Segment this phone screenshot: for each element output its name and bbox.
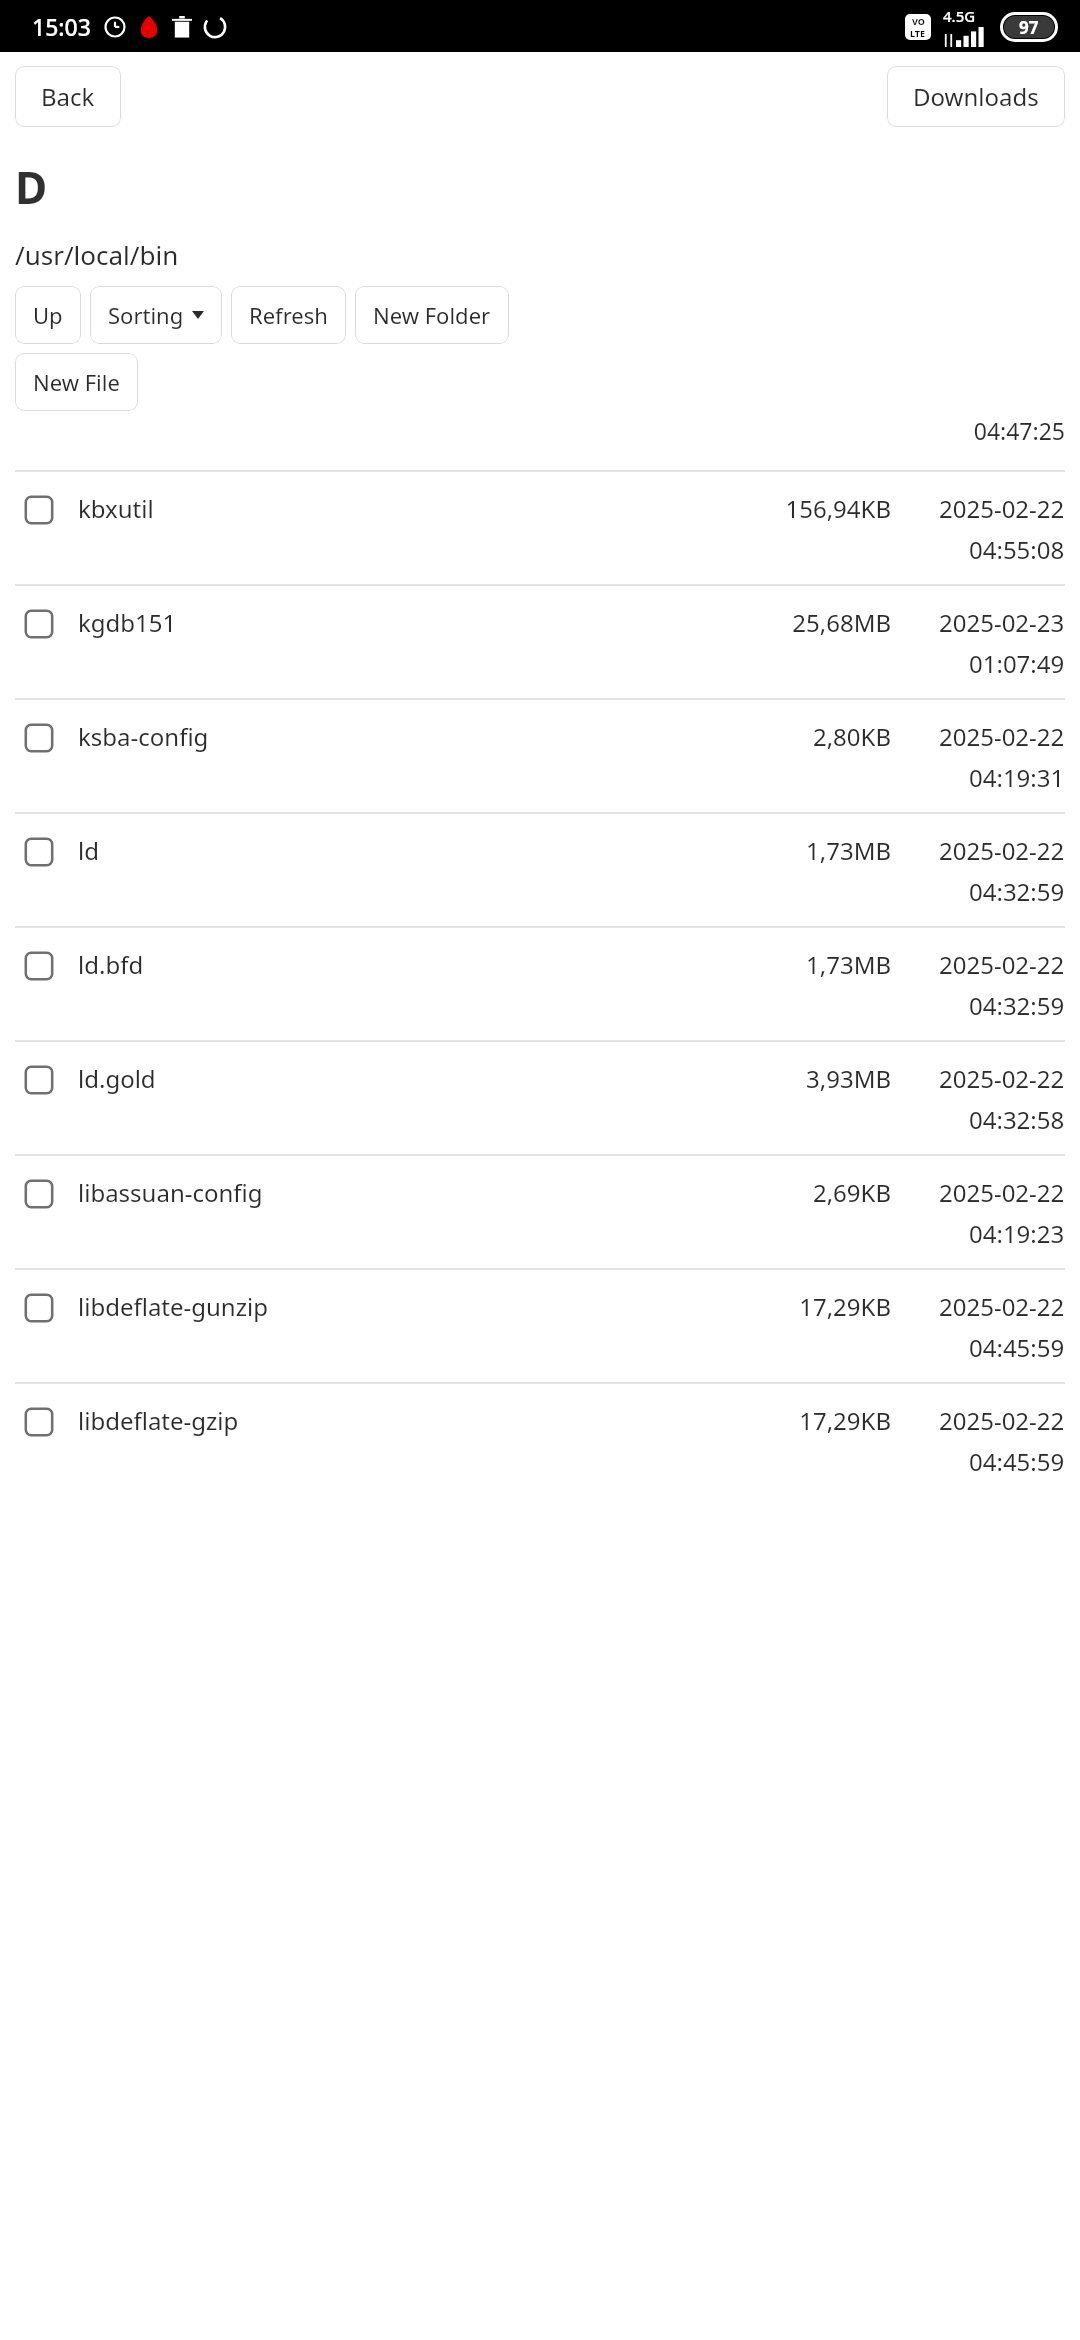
other: Select ksba-config xyxy=(24,723,54,753)
staticText: libdeflate-gzip xyxy=(78,1404,763,1437)
staticText: ld xyxy=(78,834,763,867)
staticText: 2,80KB xyxy=(763,720,891,753)
staticText: 04:55:08 xyxy=(969,533,1065,566)
staticText: 2025-02-22 xyxy=(939,492,1065,525)
staticText: 1,73MB xyxy=(763,948,891,981)
staticText: LTE xyxy=(910,27,926,39)
button[interactable]: Back xyxy=(15,66,121,127)
staticText: libdeflate-gunzip xyxy=(78,1290,763,1323)
staticText: 2025-02-22 xyxy=(939,948,1065,981)
staticText: 156,94KB xyxy=(763,492,891,525)
button[interactable]: Refresh xyxy=(231,286,346,344)
staticText: 2025-02-22 xyxy=(939,1062,1065,1095)
staticText: 2025-02-22 xyxy=(939,1176,1065,1209)
staticText: 1,73MB xyxy=(763,834,891,867)
staticText: 3,93MB xyxy=(763,1062,891,1095)
button[interactable]: Select ksba-config xyxy=(15,700,1065,812)
other: Select kbxutil xyxy=(24,495,54,525)
staticText: 25,68MB xyxy=(763,606,891,639)
staticText: Back xyxy=(41,80,95,113)
staticText: /usr/local/bin xyxy=(15,237,179,272)
other: Select kgdb151 xyxy=(24,609,54,639)
button[interactable]: Select ld.bfd xyxy=(15,928,1065,1040)
button[interactable]: Select libdeflate-gzip xyxy=(15,1384,1065,1496)
staticText: kbxutil xyxy=(78,492,763,525)
staticText: 4.5G xyxy=(943,6,976,26)
staticText: VO xyxy=(912,15,925,27)
staticText: 17,29KB xyxy=(763,1290,891,1323)
staticText: 2025-02-22 xyxy=(939,834,1065,867)
staticText: 04:45:59 xyxy=(969,1445,1065,1478)
button[interactable]: Up xyxy=(15,286,81,344)
button[interactable]: Select kbxutil xyxy=(15,472,1065,584)
other: Select ld.gold xyxy=(24,1065,54,1095)
staticText: 04:32:58 xyxy=(969,1103,1065,1136)
staticText: 2,69KB xyxy=(763,1176,891,1209)
button[interactable]: Select libassuan-config xyxy=(15,1156,1065,1268)
staticText: 04:19:31 xyxy=(969,761,1065,794)
staticText: Downloads xyxy=(913,80,1039,113)
staticText: 2025-02-22 xyxy=(939,720,1065,753)
staticText: ld.gold xyxy=(78,1062,763,1095)
other: Select libdeflate-gzip xyxy=(24,1407,54,1437)
staticText: Up xyxy=(33,300,63,330)
staticText: 2025-02-23 xyxy=(939,606,1065,639)
button[interactable]: Select kgdb151 xyxy=(15,586,1065,698)
staticText: 04:19:23 xyxy=(969,1217,1065,1250)
button[interactable]: Select ld xyxy=(15,814,1065,926)
other: Select libdeflate-gunzip xyxy=(24,1293,54,1323)
staticText: Refresh xyxy=(249,300,328,330)
staticText: 04:47:25 xyxy=(907,415,1065,446)
staticText: Sorting xyxy=(108,300,184,330)
staticText: 97 xyxy=(1019,16,1039,38)
staticText: New Folder xyxy=(373,300,491,330)
staticText: New File xyxy=(33,367,120,397)
staticText: 04:32:59 xyxy=(969,875,1065,908)
other: Select libassuan-config xyxy=(24,1179,54,1209)
button[interactable]: Sorting xyxy=(90,286,222,344)
button[interactable]: Select ld.gold xyxy=(15,1042,1065,1154)
staticText: libassuan-config xyxy=(78,1176,763,1209)
staticText: 2025-02-22 xyxy=(939,1404,1065,1437)
staticText: 17,29KB xyxy=(763,1404,891,1437)
button[interactable]: Downloads xyxy=(887,66,1065,127)
staticText: D xyxy=(15,157,48,217)
staticText: 01:07:49 xyxy=(969,647,1065,680)
staticText: ld.bfd xyxy=(78,948,763,981)
button[interactable]: Select libdeflate-gunzip xyxy=(15,1270,1065,1382)
other: Select ld xyxy=(24,837,54,867)
button[interactable]: New Folder xyxy=(355,286,509,344)
other: Select ld.bfd xyxy=(24,951,54,981)
staticText: 15:03 xyxy=(32,11,91,42)
staticText: kgdb151 xyxy=(78,606,763,639)
button[interactable]: New File xyxy=(15,353,138,411)
staticText: 2025-02-22 xyxy=(939,1290,1065,1323)
staticText: ksba-config xyxy=(78,720,763,753)
staticText: 04:32:59 xyxy=(969,989,1065,1022)
staticText: 04:45:59 xyxy=(969,1331,1065,1364)
